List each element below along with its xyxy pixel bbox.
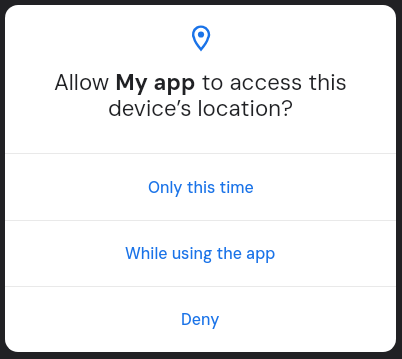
staticText: Only this time: [148, 177, 254, 198]
button[interactable]: Deny: [5, 287, 396, 352]
button[interactable]: Only this time: [5, 154, 396, 220]
staticText: While using the app: [125, 243, 276, 264]
button[interactable]: While using the app: [5, 221, 396, 286]
staticText: Deny: [181, 309, 220, 330]
staticText: Allow My app to access this device’s loc…: [5, 68, 396, 123]
